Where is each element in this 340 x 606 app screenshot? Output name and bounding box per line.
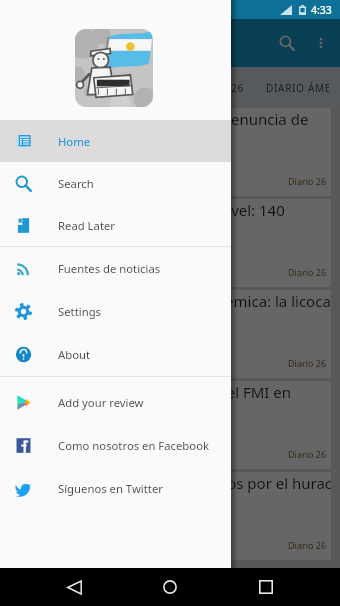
button[interactable]: About	[0, 333, 231, 376]
button[interactable]: Back	[52, 568, 96, 606]
staticText: Como nosotros en Facebook	[58, 438, 210, 453]
button[interactable]: Home	[148, 568, 192, 606]
staticText: Ayudan a las personas afectados por el h…	[13, 473, 331, 493]
button[interactable]: DIARIO ÁMBITO	[255, 75, 340, 101]
staticText: Tensión en la Ciudad por una denuncia de	[13, 109, 309, 129]
button[interactable]: Search	[267, 23, 307, 63]
button[interactable]: Como nosotros en Facebook	[0, 424, 231, 467]
staticText: Diario 26	[288, 266, 327, 278]
button[interactable]: Volvió a subir el combustible nivel: 140	[0, 199, 340, 287]
button[interactable]: El Gobierno cerró el acuerdo del FMI en	[0, 381, 340, 469]
staticText: About	[58, 347, 91, 362]
button[interactable]: DIARIO 26	[178, 75, 255, 101]
staticText: Settings	[58, 304, 101, 319]
staticText: Home	[58, 134, 91, 149]
staticText: DIARIO ÁMBITO	[266, 81, 329, 95]
staticText: Diario 26	[288, 175, 327, 187]
staticText: Síguenos en Twitter	[58, 481, 163, 496]
button[interactable]: Fuentes de noticias	[0, 247, 231, 290]
button[interactable]: Ayudan a las personas afectados por el h…	[0, 472, 340, 560]
button[interactable]: Recents	[244, 568, 288, 606]
staticText: 4:33	[311, 3, 332, 17]
staticText: Fuentes de noticias	[58, 261, 161, 276]
staticText: Add your review	[58, 395, 144, 410]
staticText: Volvió a subir el combustible nivel: 140	[13, 200, 285, 220]
staticText: Escándalo en el país por la polémica: la…	[13, 291, 331, 311]
staticText: DIARIO 26	[189, 81, 244, 95]
button[interactable]: Escándalo en el país por la polémica: la…	[0, 290, 340, 378]
button[interactable]: Search	[0, 162, 231, 204]
staticText: El Gobierno cerró el acuerdo del FMI en	[13, 382, 292, 402]
button[interactable]: Add your review	[0, 381, 231, 424]
staticText: Diario 26	[288, 357, 327, 369]
button[interactable]: Home	[0, 120, 231, 162]
staticText: Diario 26	[288, 539, 327, 551]
staticText: Search	[58, 176, 94, 191]
staticText: Diario 26	[288, 448, 327, 460]
button[interactable]: Settings	[0, 290, 231, 333]
button[interactable]: Read Later	[0, 204, 231, 246]
button[interactable]: More options	[303, 25, 339, 61]
button[interactable]: Tensión en la Ciudad por una denuncia de	[0, 108, 340, 196]
button[interactable]: Síguenos en Twitter	[0, 467, 231, 510]
staticText: Read Later	[58, 218, 115, 233]
